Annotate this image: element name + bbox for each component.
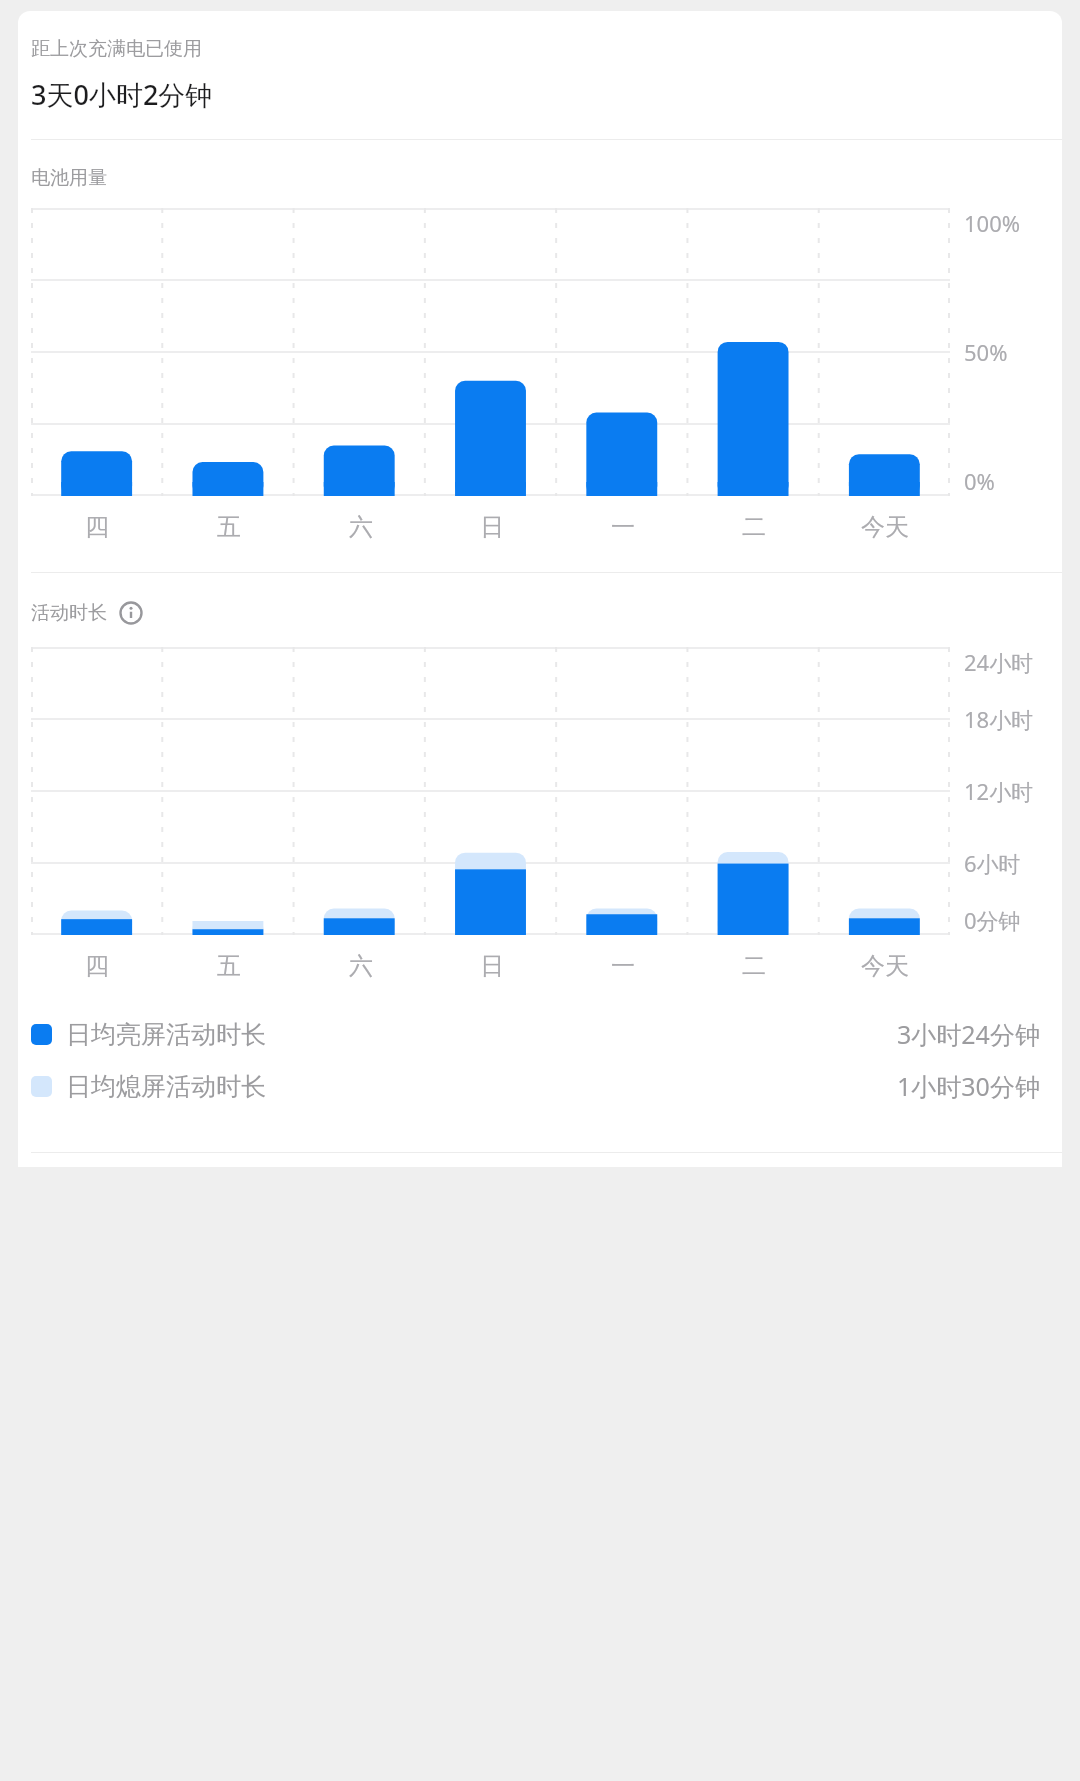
staticText: 六 xyxy=(349,951,373,981)
staticText: 0分钟 xyxy=(964,905,1021,935)
staticText: 五 xyxy=(217,512,241,542)
staticText: 今天 xyxy=(861,951,909,981)
staticText: 距上次充满电已使用 xyxy=(31,37,202,61)
staticText: 活动时长 xyxy=(31,601,107,625)
staticText: 0% xyxy=(964,466,995,496)
staticText: 3小时24分钟 xyxy=(897,1017,1040,1051)
button[interactable]: 活动时长说明 xyxy=(117,599,145,627)
staticText: 二 xyxy=(742,951,766,981)
button[interactable]: 日均亮屏活动时长 xyxy=(18,1013,1062,1055)
staticText: 日均亮屏活动时长 xyxy=(66,1019,266,1050)
staticText: 五 xyxy=(217,951,241,981)
staticText: 六 xyxy=(349,512,373,542)
staticText: 今天 xyxy=(861,512,909,542)
staticText: 18小时 xyxy=(964,704,1034,734)
staticText: 四 xyxy=(85,512,109,542)
staticText: 一 xyxy=(611,512,635,542)
staticText: 日均熄屏活动时长 xyxy=(66,1071,266,1102)
staticText: 6小时 xyxy=(964,848,1021,878)
staticText: 100% xyxy=(964,208,1021,238)
staticText: 日 xyxy=(480,512,504,542)
staticText: 四 xyxy=(85,951,109,981)
staticText: 24小时 xyxy=(964,647,1034,677)
staticText: 3天0小时2分钟 xyxy=(31,76,213,113)
staticText: 1小时30分钟 xyxy=(897,1069,1040,1103)
staticText: 一 xyxy=(611,951,635,981)
button[interactable]: 日均熄屏活动时长 xyxy=(18,1065,1062,1107)
staticText: 日 xyxy=(480,951,504,981)
staticText: 50% xyxy=(964,337,1008,367)
staticText: 二 xyxy=(742,512,766,542)
staticText: 12小时 xyxy=(964,776,1034,806)
staticText: 电池用量 xyxy=(31,166,107,190)
